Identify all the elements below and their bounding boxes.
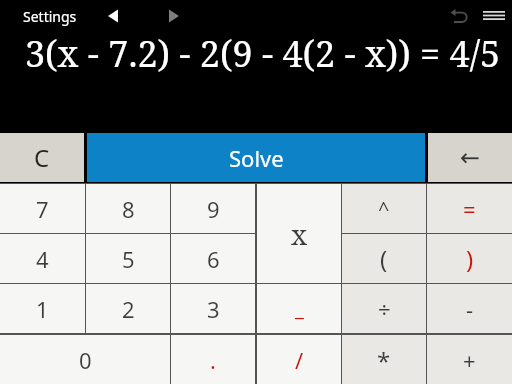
button[interactable]: 0 <box>0 335 170 384</box>
button[interactable]: 6 <box>171 234 255 283</box>
staticText: ÷ <box>378 294 391 324</box>
staticText: 5 <box>122 244 135 274</box>
button[interactable] <box>105 8 121 24</box>
staticText: 3(x - 7.2) - 2(9 - 4(2 - x)) = 4/5 <box>25 29 501 78</box>
staticText: / <box>295 345 304 375</box>
button[interactable]: ) <box>427 234 512 283</box>
staticText: . <box>210 345 216 375</box>
staticText: + <box>463 345 476 375</box>
button[interactable]: / <box>257 335 341 384</box>
button[interactable]: - <box>427 284 512 333</box>
button[interactable]: 4 <box>0 234 85 283</box>
button[interactable]: x <box>257 184 341 283</box>
staticText: x <box>291 215 308 253</box>
staticText: 9 <box>207 194 220 224</box>
staticText: 3 <box>207 294 220 324</box>
staticText: = <box>463 194 476 224</box>
staticText: C <box>34 141 50 174</box>
button[interactable]: * <box>342 335 426 384</box>
button[interactable]: 2 <box>86 284 170 333</box>
button[interactable] <box>446 5 470 27</box>
button[interactable]: 5 <box>86 234 170 283</box>
button[interactable]: ÷ <box>342 284 426 333</box>
staticText: 1 <box>36 294 49 324</box>
button[interactable]: Settings <box>10 2 90 30</box>
staticText: 6 <box>207 244 220 274</box>
button[interactable]: . <box>171 335 255 384</box>
button[interactable]: 1 <box>0 284 85 333</box>
staticText: 0 <box>79 345 92 375</box>
staticText: * <box>377 344 391 377</box>
staticText: _ <box>295 295 304 322</box>
button[interactable]: _ <box>257 284 341 333</box>
staticText: - <box>466 294 474 324</box>
button[interactable]: 8 <box>86 184 170 233</box>
button[interactable]: ← <box>428 133 512 182</box>
button[interactable]: 7 <box>0 184 85 233</box>
button[interactable]: 9 <box>171 184 255 233</box>
staticText: ^ <box>378 195 390 222</box>
staticText: Settings <box>23 7 77 26</box>
staticText: ) <box>466 242 474 275</box>
staticText: 2 <box>122 294 135 324</box>
staticText: 7 <box>36 194 49 224</box>
button[interactable]: 3 <box>171 284 255 333</box>
button[interactable]: C <box>0 133 84 182</box>
staticText: 4 <box>36 244 49 274</box>
button[interactable] <box>166 8 182 24</box>
staticText: Solve <box>229 143 284 173</box>
button[interactable] <box>481 8 508 24</box>
staticText: 8 <box>122 194 135 224</box>
button[interactable]: = <box>427 184 512 233</box>
staticText: ( <box>380 242 388 275</box>
button[interactable]: Solve <box>87 133 425 182</box>
button[interactable]: + <box>427 335 512 384</box>
button[interactable]: ^ <box>342 184 426 233</box>
button[interactable]: ( <box>342 234 426 283</box>
staticText: ← <box>460 144 481 172</box>
